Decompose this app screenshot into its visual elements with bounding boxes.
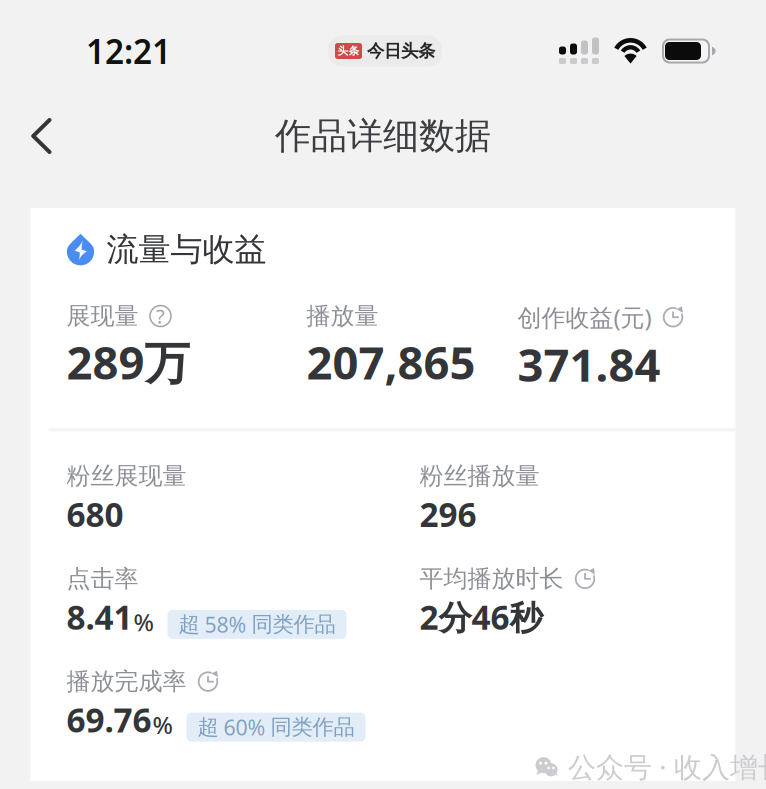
staticText: 207,865 <box>306 332 475 392</box>
staticText: 371.84 <box>517 334 660 394</box>
staticText: 播放量 <box>306 301 378 331</box>
staticText: 头条 <box>337 44 359 57</box>
staticText: 今日头条 <box>367 40 435 62</box>
staticText: 点击率 <box>66 564 138 594</box>
staticText: 展现量 <box>66 301 138 331</box>
staticText: 289万 <box>66 332 189 392</box>
staticText: 流量与收益 <box>106 230 266 269</box>
staticText: % <box>133 606 153 638</box>
staticText: % <box>152 709 172 741</box>
staticText: 680 <box>66 492 123 536</box>
staticText: 作品详细数据 <box>275 114 491 158</box>
staticText: 同类作品 <box>270 714 354 740</box>
staticText: 粉丝播放量 <box>419 461 539 491</box>
staticText: 12:21 <box>86 29 171 73</box>
staticText: 平均播放时长 <box>419 564 563 594</box>
staticText: 60% <box>223 713 265 741</box>
staticText: ? <box>156 303 165 329</box>
staticText: 播放完成率 <box>66 667 186 696</box>
staticText: 创作收益(元) <box>517 301 651 333</box>
staticText: 粉丝展现量 <box>66 461 186 491</box>
staticText: 296 <box>419 492 476 536</box>
staticText: 超 <box>178 611 199 637</box>
staticText: 58% <box>204 610 246 638</box>
staticText: 超 <box>197 714 218 740</box>
button[interactable]: Back <box>0 123 70 187</box>
staticText: 2分46秒 <box>419 595 542 639</box>
staticText: 69.76 <box>66 697 151 742</box>
staticText: 8.41 <box>66 595 132 639</box>
staticText: 同类作品 <box>251 611 335 637</box>
staticText: 公众号 · 收入增长 <box>568 748 766 785</box>
